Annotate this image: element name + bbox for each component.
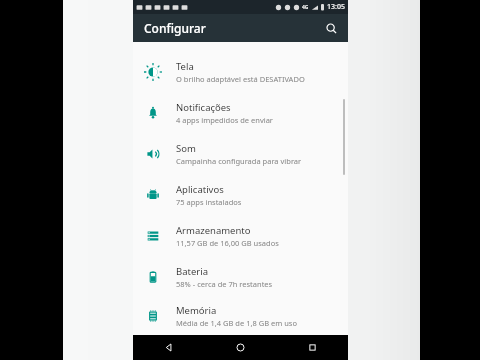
- staticText: 75 apps instalados: [176, 197, 242, 207]
- staticText: O brilho adaptável está DESATIVADO: [176, 74, 305, 84]
- staticText: Configurar: [144, 20, 206, 36]
- staticText: Memória: [176, 304, 217, 317]
- staticText: 13:05: [327, 2, 345, 12]
- button[interactable]: Pesquisar: [320, 17, 342, 39]
- staticText: 4G: [302, 4, 309, 11]
- button[interactable]: Tela: [133, 51, 348, 92]
- button[interactable]: Início: [204, 335, 276, 360]
- staticText: Som: [176, 142, 196, 155]
- staticText: Bateria: [176, 265, 208, 278]
- button[interactable]: Notificações: [133, 92, 348, 133]
- staticText: Campainha configurada para vibrar: [176, 156, 302, 166]
- staticText: Notificações: [176, 101, 231, 114]
- staticText: Tela: [176, 60, 194, 73]
- staticText: 58% - cerca de 7h restantes: [176, 279, 273, 289]
- button[interactable]: Armazenamento: [133, 215, 348, 256]
- button[interactable]: Bateria: [133, 256, 348, 297]
- staticText: 11,57 GB de 16,00 GB usados: [176, 238, 279, 248]
- staticText: Armazenamento: [176, 224, 251, 237]
- button[interactable]: Recentes: [276, 335, 348, 360]
- button[interactable]: Memória: [133, 297, 348, 335]
- staticText: 4 apps impedidos de enviar: [176, 115, 273, 125]
- button[interactable]: Som: [133, 133, 348, 174]
- button[interactable]: Aplicativos: [133, 174, 348, 215]
- staticText: Aplicativos: [176, 183, 224, 196]
- staticText: Média de 1,4 GB de 1,8 GB em uso: [176, 318, 297, 328]
- button[interactable]: Voltar: [133, 335, 204, 360]
